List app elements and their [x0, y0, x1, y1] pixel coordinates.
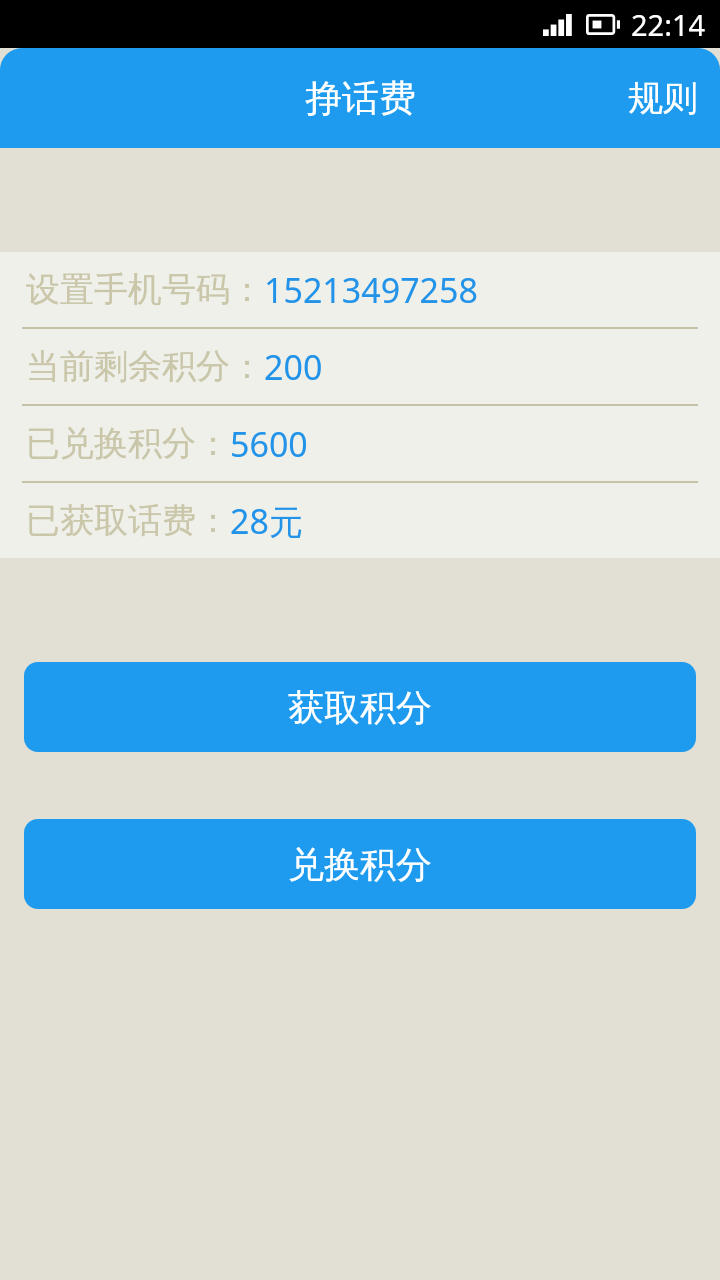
button[interactable]: 当前剩余积分： [0, 329, 720, 404]
staticText: 15213497258 [264, 267, 478, 313]
staticText: 22:14 [631, 5, 706, 44]
button[interactable]: 设置手机号码： [0, 252, 720, 327]
button[interactable]: 获取积分 [24, 662, 696, 752]
staticText: 已获取话费： [26, 499, 230, 542]
button[interactable]: 已获取话费： [0, 483, 720, 558]
button[interactable]: 规则 [606, 48, 720, 148]
staticText: 28元 [230, 498, 303, 544]
staticText: 规则 [628, 76, 698, 120]
other: Signal strength [543, 14, 573, 36]
staticText: 挣话费 [305, 75, 416, 122]
staticText: 设置手机号码： [26, 268, 264, 311]
button[interactable]: 兑换积分 [24, 819, 696, 909]
staticText: 当前剩余积分： [26, 345, 264, 388]
staticText: 兑换积分 [288, 842, 432, 887]
other: Battery [586, 14, 620, 35]
staticText: 已兑换积分： [26, 422, 230, 465]
button[interactable]: 已兑换积分： [0, 406, 720, 481]
staticText: 5600 [230, 421, 308, 467]
staticText: 获取积分 [288, 685, 432, 730]
staticText: 200 [264, 344, 323, 390]
